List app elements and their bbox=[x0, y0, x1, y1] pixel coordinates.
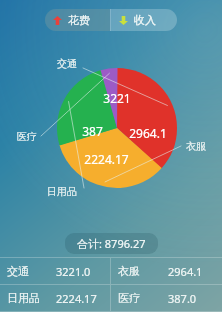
staticText: 387 bbox=[82, 123, 103, 139]
staticText: 合计: 8796.27 bbox=[77, 236, 146, 251]
button[interactable]: 收入 bbox=[111, 9, 177, 31]
staticText: 2224.17 bbox=[56, 291, 97, 306]
staticText: 交通 bbox=[7, 264, 29, 278]
staticText: 2224.17 bbox=[84, 151, 129, 167]
staticText: 衣服 bbox=[186, 140, 206, 153]
button[interactable]: 医疗 bbox=[111, 285, 222, 311]
button[interactable]: 合计: 8796.27 bbox=[65, 233, 158, 254]
staticText: 收入 bbox=[134, 13, 156, 27]
button[interactable]: 花费 bbox=[45, 9, 110, 31]
button[interactable]: 衣服 bbox=[111, 258, 222, 284]
staticText: 衣服 bbox=[118, 264, 140, 278]
staticText: 医疗 bbox=[118, 291, 140, 305]
staticText: 387.0 bbox=[168, 291, 197, 306]
staticText: 日用品 bbox=[7, 291, 40, 305]
staticText: 医疗 bbox=[17, 130, 37, 143]
staticText: 2964.1 bbox=[129, 125, 167, 141]
staticText: 3221 bbox=[103, 90, 131, 106]
button[interactable]: 日用品 bbox=[0, 285, 110, 311]
staticText: 2964.1 bbox=[168, 264, 203, 279]
button[interactable]: 交通 bbox=[0, 258, 110, 284]
staticText: 交通 bbox=[57, 57, 77, 70]
staticText: 3221.0 bbox=[56, 264, 91, 279]
staticText: 花费 bbox=[68, 13, 90, 27]
staticText: 日用品 bbox=[47, 185, 77, 198]
